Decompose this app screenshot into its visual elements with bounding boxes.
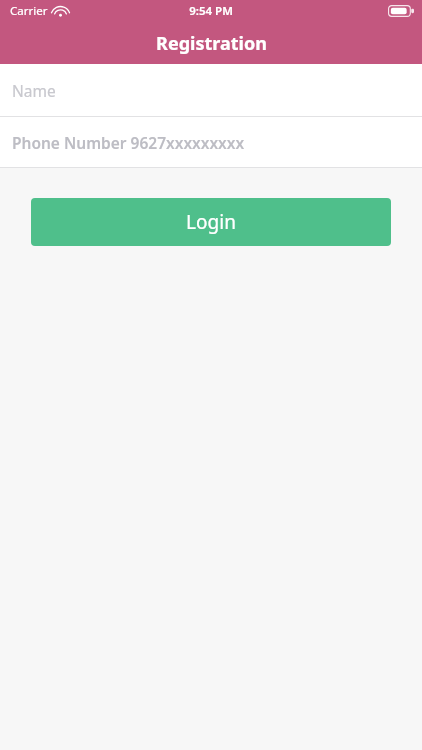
button[interactable]: Name [0,64,422,116]
staticText: Name [12,80,56,101]
button[interactable]: Phone Number 9627xxxxxxxxx [0,117,422,167]
other: Battery [388,5,414,17]
staticText: Registration [156,31,267,56]
button[interactable]: Login [31,198,391,246]
staticText: Login [186,209,236,235]
staticText: Phone Number 9627xxxxxxxxx [12,132,245,153]
staticText: 9:54 PM [189,3,233,19]
staticText: Carrier [10,3,48,19]
other: Wi-Fi signal [53,6,68,17]
